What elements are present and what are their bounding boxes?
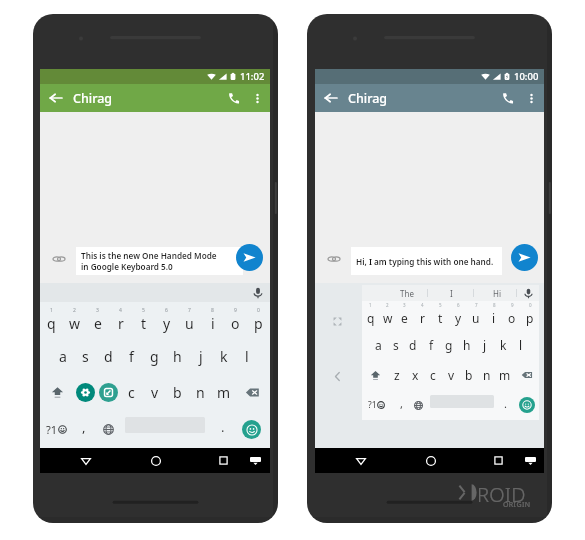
button[interactable]: 2 — [379, 301, 396, 330]
button[interactable]: 7 — [467, 301, 485, 330]
button[interactable]: 6 — [155, 302, 178, 338]
button[interactable]: n — [189, 374, 212, 411]
staticText: c — [128, 383, 135, 402]
button[interactable]: 8 — [201, 302, 224, 338]
staticText: 7 — [475, 302, 478, 308]
button[interactable]: Language — [97, 411, 119, 448]
button[interactable]: Emoji — [517, 390, 537, 420]
button[interactable]: b — [460, 360, 478, 390]
button[interactable]: More options — [246, 87, 268, 109]
button[interactable]: Shift — [40, 374, 74, 411]
button[interactable]: 4 — [413, 301, 431, 330]
button[interactable]: a — [51, 338, 74, 374]
button[interactable]: . — [495, 390, 515, 420]
button[interactable]: b — [166, 374, 189, 411]
button[interactable]: 9 — [503, 301, 521, 330]
staticText: o — [231, 314, 240, 333]
button[interactable]: 0 — [247, 302, 270, 338]
button[interactable]: h — [166, 338, 189, 374]
button[interactable]: k — [212, 338, 235, 374]
button[interactable]: Emoji — [240, 411, 262, 448]
button[interactable]: 5 — [431, 301, 449, 330]
staticText: p — [526, 310, 534, 326]
button[interactable]: Backspace — [514, 360, 539, 390]
button[interactable]: Hi — [483, 285, 511, 301]
button[interactable]: . — [212, 411, 234, 448]
button[interactable]: The — [393, 285, 421, 301]
button[interactable]: I — [437, 285, 465, 301]
staticText: n — [483, 367, 491, 383]
button[interactable]: Back — [72, 448, 99, 473]
staticText: 6 — [165, 307, 168, 314]
button[interactable]: a — [370, 330, 387, 360]
button[interactable]: c — [120, 374, 143, 411]
button[interactable]: 3 — [396, 301, 413, 330]
button[interactable]: 1 — [362, 301, 379, 330]
button[interactable]: Back — [347, 448, 374, 473]
button[interactable]: 9 — [224, 302, 247, 338]
button[interactable]: Voice input — [517, 285, 539, 301]
button[interactable]: Recents — [485, 448, 512, 473]
button[interactable]: 3 — [86, 302, 109, 338]
button[interactable]: Hide keyboard — [243, 448, 268, 473]
button[interactable]: v — [442, 360, 460, 390]
button[interactable]: j — [189, 338, 212, 374]
button[interactable]: 6 — [449, 301, 467, 330]
button[interactable]: n — [478, 360, 496, 390]
button[interactable]: 0 — [521, 301, 539, 330]
button[interactable]: g — [143, 338, 166, 374]
button[interactable]: Language — [408, 390, 428, 420]
button[interactable]: Home — [417, 448, 444, 473]
button[interactable]: Call — [496, 86, 520, 110]
button[interactable]: , — [391, 390, 411, 420]
button[interactable]: l — [235, 338, 258, 374]
button[interactable]: Recents — [210, 448, 237, 473]
button[interactable]: 4 — [109, 302, 132, 338]
button[interactable]: One handed mode — [97, 374, 120, 411]
button[interactable]: s — [387, 330, 404, 360]
button[interactable]: c — [424, 360, 442, 390]
button[interactable]: Voice input — [249, 284, 267, 302]
button[interactable]: 5 — [132, 302, 155, 338]
button[interactable]: d — [404, 330, 422, 360]
button[interactable]: s — [74, 338, 97, 374]
button[interactable]: Attach — [50, 250, 68, 268]
button[interactable]: Backspace — [235, 374, 270, 411]
button[interactable]: 8 — [485, 301, 503, 330]
button[interactable]: Call — [222, 86, 246, 110]
button[interactable]: f — [120, 338, 143, 374]
button[interactable]: m — [496, 360, 514, 390]
button[interactable]: More options — [520, 87, 542, 109]
button[interactable]: ?1 — [42, 411, 70, 448]
button[interactable]: z — [388, 360, 406, 390]
button[interactable]: Back — [43, 84, 69, 112]
button[interactable]: h — [458, 330, 476, 360]
button[interactable]: d — [97, 338, 120, 374]
button[interactable]: 1 — [40, 302, 63, 338]
button[interactable]: ?1 — [364, 390, 388, 420]
button[interactable]: x — [406, 360, 424, 390]
button[interactable]: Expand keyboard — [325, 309, 349, 333]
button[interactable]: 7 — [178, 302, 201, 338]
button[interactable]: Attach — [325, 250, 343, 268]
button[interactable]: , — [73, 411, 95, 448]
button[interactable]: k — [494, 330, 512, 360]
staticText: t — [141, 314, 147, 333]
button[interactable]: Home — [142, 448, 169, 473]
button[interactable]: f — [422, 330, 440, 360]
button[interactable]: Send — [236, 244, 263, 271]
button[interactable]: Send — [511, 244, 538, 271]
button[interactable]: m — [212, 374, 235, 411]
button[interactable]: g — [440, 330, 458, 360]
button[interactable]: Hide keyboard — [518, 448, 543, 473]
button[interactable]: Settings — [74, 374, 97, 411]
button[interactable]: 2 — [63, 302, 86, 338]
button[interactable]: Shift — [362, 360, 388, 390]
button[interactable]: j — [476, 330, 494, 360]
button[interactable]: Move keyboard left — [325, 364, 349, 388]
button[interactable]: v — [143, 374, 166, 411]
button[interactable]: Back — [318, 84, 344, 112]
button[interactable]: l — [512, 330, 530, 360]
